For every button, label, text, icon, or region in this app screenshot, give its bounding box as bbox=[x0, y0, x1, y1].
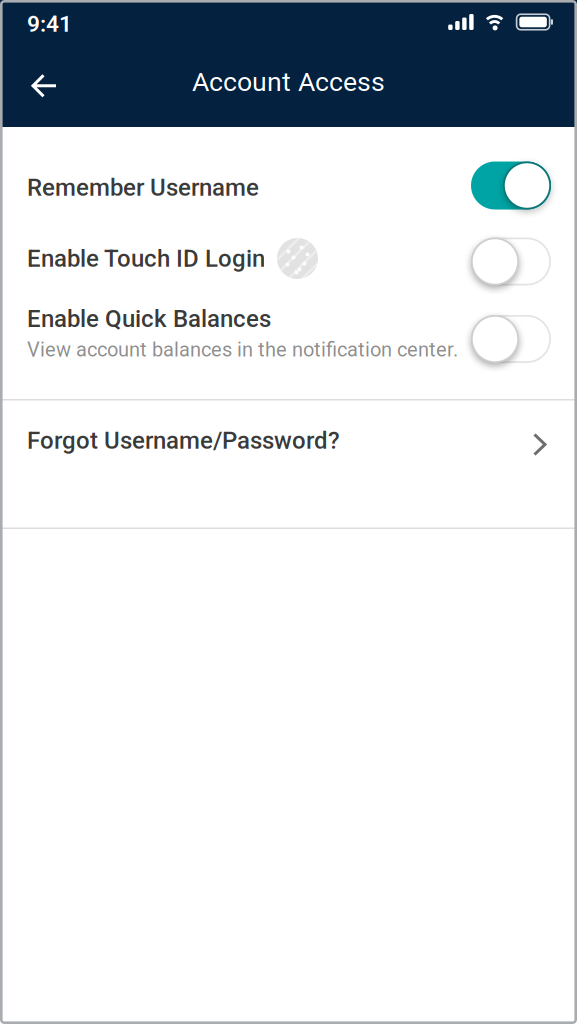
button[interactable]: Enable Quick Balances bbox=[0, 300, 577, 378]
staticText: View account balances in the notificatio… bbox=[27, 338, 458, 361]
staticText: Remember Username bbox=[27, 173, 259, 201]
staticText: Forgot Username/Password? bbox=[27, 426, 340, 454]
button[interactable]: Remember Username bbox=[0, 127, 577, 223]
staticText: Account Access bbox=[192, 66, 385, 97]
staticText: Enable Touch ID Login bbox=[27, 244, 265, 272]
button[interactable]: Forgot Username/Password? bbox=[0, 400, 577, 488]
button[interactable]: Enable Touch ID Login bbox=[0, 223, 577, 300]
staticText: Enable Quick Balances bbox=[27, 305, 271, 333]
staticText: 9:41 bbox=[27, 11, 72, 37]
button[interactable]: Back bbox=[0, 66, 57, 98]
